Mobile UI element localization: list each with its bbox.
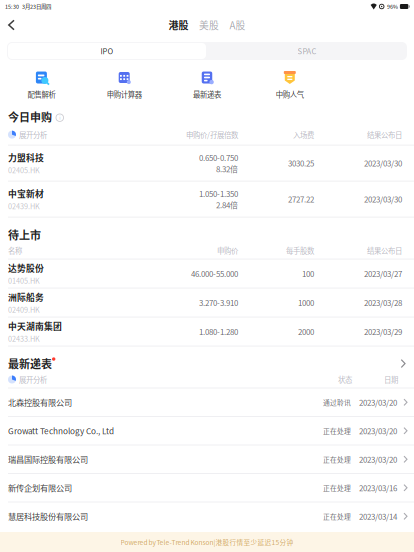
button[interactable]: 北森控股有限公司 xyxy=(0,388,414,416)
staticText: 每手股数 xyxy=(286,245,314,256)
button[interactable]: 港股 xyxy=(168,18,188,32)
staticText: 最新递表 xyxy=(8,356,52,371)
staticText: 名称 xyxy=(8,245,22,256)
staticText: 02405.HK xyxy=(8,165,40,175)
button[interactable]: Growatt Technology Co., Ltd xyxy=(0,417,414,444)
staticText: 美股 xyxy=(199,18,219,32)
button[interactable]: 新传企划有限公司 xyxy=(0,474,414,501)
staticText: i xyxy=(59,114,60,121)
staticText: 3.270-3.910 xyxy=(199,297,238,308)
button[interactable]: 中购人气 xyxy=(248,71,331,100)
button[interactable]: 达势股份 xyxy=(0,260,414,288)
staticText: 港股 xyxy=(168,18,188,32)
button[interactable]: 洲际船务 xyxy=(0,289,414,317)
staticText: 2023/03/29 xyxy=(364,326,402,337)
staticText: 申购价/孖展倍数 xyxy=(186,129,238,140)
staticText: 通过聆讯 xyxy=(323,397,351,407)
staticText: 申购计算器 xyxy=(107,89,142,100)
staticText: 100 xyxy=(302,268,314,279)
staticText: 3030.25 xyxy=(288,157,314,169)
staticText: 15:30 3月23日周四 xyxy=(5,3,51,10)
staticText: 2023/03/20 xyxy=(359,425,397,436)
staticText: 洲际船务 xyxy=(8,290,44,303)
staticText: 8.32倍 xyxy=(216,163,238,175)
button[interactable]: 中天湖南集团 xyxy=(0,318,414,346)
button[interactable]: 最新递表 xyxy=(166,71,248,100)
staticText: 正在处理 xyxy=(323,454,351,464)
staticText: 2727.22 xyxy=(288,193,314,205)
staticText: 2023/03/20 xyxy=(359,396,397,408)
button[interactable]: 瑞昌国际控股有限公司 xyxy=(0,445,414,473)
staticText: 结果公布日 xyxy=(367,129,402,140)
staticText: 中购人气 xyxy=(276,89,304,100)
staticText: 展开分析 xyxy=(19,129,47,140)
staticText: 2023/03/30 xyxy=(364,157,402,169)
staticText: 02439.HK xyxy=(8,201,40,211)
staticText: 2023/03/30 xyxy=(364,193,402,205)
staticText: 1.050-1.350 xyxy=(199,188,238,199)
button[interactable]: 中宝新材 xyxy=(0,182,414,217)
staticText: 入场费 xyxy=(293,129,314,140)
button[interactable]: 慧居科技股份有限公司 xyxy=(0,502,414,530)
button[interactable]: 申购计算器 xyxy=(83,71,166,100)
button[interactable]: 配售解析 xyxy=(0,71,83,100)
staticText: 2023/03/27 xyxy=(364,268,402,279)
staticText: 2.84倍 xyxy=(216,199,238,211)
staticText: 0.650-0.750 xyxy=(199,152,238,163)
staticText: 今日申购 xyxy=(8,109,52,125)
staticText: 待上市 xyxy=(8,227,41,243)
staticText: 2023/03/28 xyxy=(364,297,402,308)
staticText: 慧居科技股份有限公司 xyxy=(8,510,88,522)
staticText: 中天湖南集团 xyxy=(8,319,62,332)
staticText: 2023/03/16 xyxy=(359,482,397,493)
staticText: 46.000-55.000 xyxy=(191,268,238,279)
button[interactable]: 展开分析 xyxy=(8,129,47,140)
button[interactable]: A股 xyxy=(229,18,245,32)
staticText: 申购价 xyxy=(217,245,238,256)
staticText: Powered by Tele-Trend Konson|港股行情至少延迟15分… xyxy=(120,537,293,547)
staticText: 配售解析 xyxy=(27,89,55,100)
button[interactable]: 美股 xyxy=(199,18,219,32)
staticText: 正在处理 xyxy=(323,483,351,493)
staticText: 中宝新材 xyxy=(8,187,44,200)
staticText: 01405.HK xyxy=(8,275,40,286)
staticText: 2000 xyxy=(298,326,314,337)
staticText: 1000 xyxy=(298,297,314,308)
staticText: 达势股份 xyxy=(8,261,44,274)
staticText: IPO xyxy=(100,45,113,56)
staticText: 北森控股有限公司 xyxy=(8,396,72,408)
button[interactable]: IPO xyxy=(7,42,207,60)
staticText: 展开分析 xyxy=(19,374,47,385)
staticText: 结果公布日 xyxy=(367,245,402,256)
staticText: 力盟科技 xyxy=(8,151,44,164)
staticText: 正在处理 xyxy=(323,511,351,521)
button[interactable]: 最新递表 xyxy=(0,347,414,371)
staticText: 新传企划有限公司 xyxy=(8,482,72,494)
staticText: 状态 xyxy=(338,374,352,385)
staticText: SPAC xyxy=(297,45,316,56)
staticText: Growatt Technology Co., Ltd xyxy=(8,425,114,437)
staticText: 日期 xyxy=(384,374,398,385)
staticText: 最新递表 xyxy=(193,89,221,100)
staticText: 96% xyxy=(387,3,398,10)
button[interactable]: 力盟科技 xyxy=(0,146,414,181)
staticText: 正在处理 xyxy=(323,426,351,436)
staticText: 02409.HK xyxy=(8,304,40,315)
staticText: 2023/03/20 xyxy=(359,453,397,465)
button[interactable]: Back xyxy=(0,13,23,36)
button[interactable]: 展开分析 xyxy=(8,374,47,385)
staticText: A股 xyxy=(229,18,245,32)
button[interactable]: SPAC xyxy=(207,42,407,60)
staticText: 02433.HK xyxy=(8,333,40,344)
staticText: 瑞昌国际控股有限公司 xyxy=(8,453,88,465)
staticText: 2023/03/14 xyxy=(359,510,397,522)
staticText: 1.080-1.280 xyxy=(199,326,238,337)
